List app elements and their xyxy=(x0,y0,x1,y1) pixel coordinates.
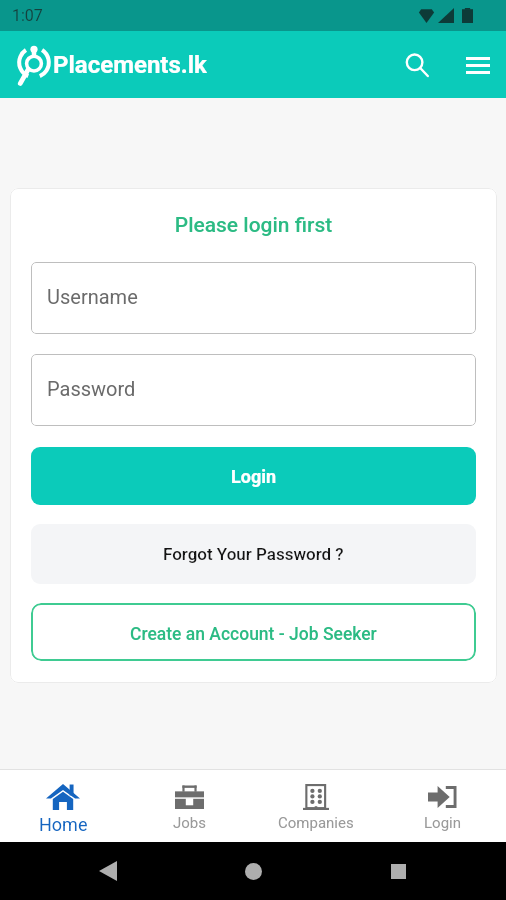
button[interactable]: Companies xyxy=(252,770,379,842)
staticText: Companies xyxy=(278,814,354,832)
staticText: 1:07 xyxy=(12,6,43,25)
button[interactable]: Jobs xyxy=(126,770,252,842)
button[interactable]: Login xyxy=(379,770,506,842)
staticText: Home xyxy=(39,814,88,835)
staticText: Login xyxy=(424,814,461,832)
staticText: Username xyxy=(47,285,138,308)
staticText: Login xyxy=(231,466,277,487)
button[interactable]: Username xyxy=(31,262,476,334)
button[interactable]: Login xyxy=(31,447,476,505)
button[interactable]: Forgot Your Password ? xyxy=(31,524,476,584)
button[interactable]: Password xyxy=(31,354,476,426)
staticText: Jobs xyxy=(173,814,206,832)
staticText: Password xyxy=(47,377,136,400)
staticText: Forgot Your Password ? xyxy=(163,544,344,564)
button[interactable]: Menu xyxy=(450,37,506,93)
button[interactable]: Search xyxy=(384,32,450,98)
staticText: Please login first xyxy=(31,213,476,238)
button[interactable]: Back xyxy=(84,847,132,895)
button[interactable]: Home xyxy=(0,770,126,842)
staticText: Create an Account - Job Seeker xyxy=(130,624,377,645)
button[interactable]: Recents xyxy=(374,847,422,895)
staticText: Placements.lk xyxy=(53,51,207,79)
button[interactable]: Home xyxy=(229,847,277,895)
button[interactable]: Create an Account - Job Seeker xyxy=(31,603,476,661)
